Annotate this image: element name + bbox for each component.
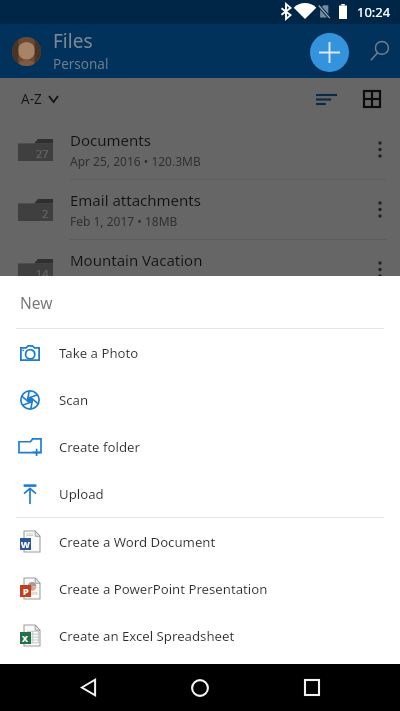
staticText: 10:24: [357, 3, 391, 21]
staticText: Pictures: [70, 310, 127, 330]
staticText: Files: [53, 28, 93, 54]
staticText: Mountain Vacation: [70, 250, 203, 270]
staticText: Jan 14, 2017 • 1.2GB: [70, 273, 183, 289]
button[interactable]: Search: [362, 33, 398, 69]
button[interactable]: Upload: [0, 470, 400, 517]
staticText: New: [20, 292, 53, 313]
button[interactable]: Scan: [0, 376, 400, 423]
staticText: X: [22, 632, 29, 644]
button[interactable]: W: [0, 518, 400, 565]
staticText: W: [21, 538, 30, 550]
button[interactable]: Add: [310, 33, 349, 72]
staticText: Create a PowerPoint Presentation: [59, 580, 268, 598]
staticText: A-Z: [21, 90, 42, 108]
button[interactable]: Back: [64, 664, 112, 711]
button[interactable]: X: [0, 612, 400, 659]
button[interactable]: Create folder: [0, 423, 400, 470]
staticText: Documents: [70, 130, 151, 150]
button[interactable]: List view: [310, 83, 342, 115]
staticText: P: [23, 585, 29, 597]
button[interactable]: 27: [0, 120, 400, 179]
staticText: Create folder: [59, 438, 140, 456]
button[interactable]: A-Z: [21, 90, 58, 108]
button[interactable]: Take a Photo: [0, 329, 400, 376]
staticText: Create an Excel Spreadsheet: [59, 627, 235, 645]
staticText: Feb 1, 2017 • 18MB: [70, 213, 178, 229]
button[interactable]: Home: [176, 664, 224, 711]
button[interactable]: 2: [0, 180, 400, 239]
staticText: 14: [36, 266, 49, 281]
button[interactable]: Grid view: [356, 83, 388, 115]
button[interactable]: P: [0, 565, 400, 612]
staticText: Create a Word Document: [59, 533, 216, 551]
staticText: 27: [36, 146, 49, 161]
staticText: Personal: [53, 55, 109, 73]
button[interactable]: Recents: [288, 664, 336, 711]
staticText: Mar 3, 2017 • 810MB: [70, 333, 187, 349]
staticText: 53: [36, 326, 49, 341]
staticText: Apr 25, 2016 • 120.3MB: [70, 153, 201, 169]
button[interactable]: 14: [0, 240, 400, 299]
staticText: Upload: [59, 485, 104, 503]
staticText: Email attachments: [70, 190, 201, 210]
staticText: Scan: [59, 391, 89, 409]
button[interactable]: 53: [0, 300, 400, 359]
staticText: Take a Photo: [59, 344, 139, 362]
staticText: 2: [42, 206, 49, 221]
